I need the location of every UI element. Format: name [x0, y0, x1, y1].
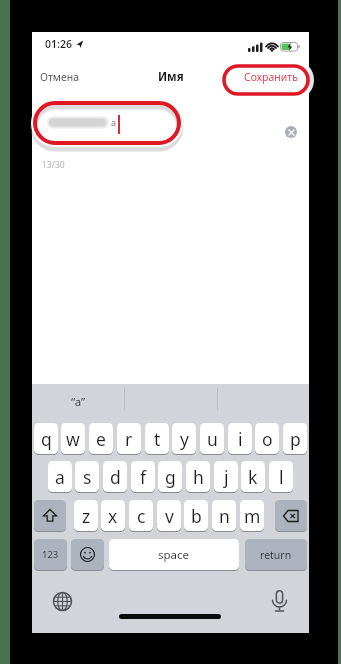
button[interactable]: x	[101, 500, 125, 531]
staticText: j	[224, 465, 229, 489]
staticText: h	[193, 465, 204, 489]
staticText: z	[82, 504, 91, 528]
button[interactable]: d	[103, 461, 127, 492]
staticText: f	[140, 465, 147, 489]
staticText: y	[180, 427, 189, 451]
staticText: 01:26	[45, 37, 72, 51]
staticText: q	[41, 427, 52, 451]
button[interactable]	[52, 591, 73, 612]
staticText: w	[66, 427, 80, 451]
button[interactable]: q	[34, 423, 58, 454]
staticText: u	[207, 427, 218, 451]
button[interactable]: c	[129, 500, 153, 531]
staticText: return	[260, 548, 292, 562]
staticText: t	[154, 427, 161, 451]
button[interactable]: space	[109, 539, 239, 570]
staticText: c	[137, 504, 146, 528]
button[interactable]: e	[89, 423, 113, 454]
staticText: i	[238, 427, 243, 451]
staticText: p	[290, 427, 301, 451]
button[interactable]	[269, 589, 290, 613]
staticText: v	[165, 504, 174, 528]
button[interactable]: n	[212, 500, 236, 531]
staticText: l	[279, 465, 284, 489]
button[interactable]	[275, 500, 307, 531]
staticText: 123	[42, 548, 59, 561]
button[interactable]: j	[214, 461, 238, 492]
staticText: n	[219, 504, 230, 528]
staticText: x	[108, 504, 118, 528]
staticText: g	[165, 465, 176, 489]
button[interactable]	[34, 500, 66, 531]
button[interactable]: m	[240, 500, 264, 531]
button[interactable]: return	[245, 539, 307, 570]
button[interactable]: y	[172, 423, 196, 454]
staticText: s	[83, 465, 92, 489]
button[interactable]: 123	[34, 539, 67, 570]
button[interactable]: Сохранить	[240, 68, 302, 86]
button[interactable]: f	[131, 461, 155, 492]
staticText: r	[125, 427, 133, 451]
button[interactable]: v	[157, 500, 181, 531]
staticText: k	[248, 465, 258, 489]
staticText: space	[158, 547, 190, 563]
button[interactable]: i	[228, 423, 252, 454]
button[interactable]: w	[61, 423, 85, 454]
staticText: e	[96, 427, 106, 451]
button[interactable]: a	[48, 461, 72, 492]
staticText: d	[110, 465, 121, 489]
button[interactable]: Отмена	[40, 68, 90, 86]
staticText: Сохранить	[244, 70, 298, 84]
button[interactable]	[71, 539, 104, 570]
staticText: a	[55, 465, 65, 489]
button[interactable]: l	[269, 461, 293, 492]
staticText: Отмена	[40, 70, 80, 84]
staticText: Имя	[158, 69, 184, 85]
button[interactable]: k	[241, 461, 265, 492]
button[interactable]: z	[74, 500, 98, 531]
button[interactable]: u	[200, 423, 224, 454]
button[interactable]: “a”	[32, 388, 124, 416]
button[interactable]: t	[145, 423, 169, 454]
button[interactable]: s	[75, 461, 99, 492]
button[interactable]: r	[117, 423, 141, 454]
button[interactable]: g	[158, 461, 182, 492]
staticText: o	[262, 427, 273, 451]
staticText: 13/30	[42, 159, 65, 171]
button[interactable]: p	[283, 423, 307, 454]
button[interactable]: h	[186, 461, 210, 492]
staticText: m	[244, 504, 261, 528]
staticText: b	[191, 504, 202, 528]
staticText: a	[111, 116, 117, 128]
button[interactable]: b	[184, 500, 208, 531]
staticText: “a”	[71, 394, 86, 410]
button[interactable]: o	[255, 423, 279, 454]
button[interactable]	[285, 126, 297, 138]
